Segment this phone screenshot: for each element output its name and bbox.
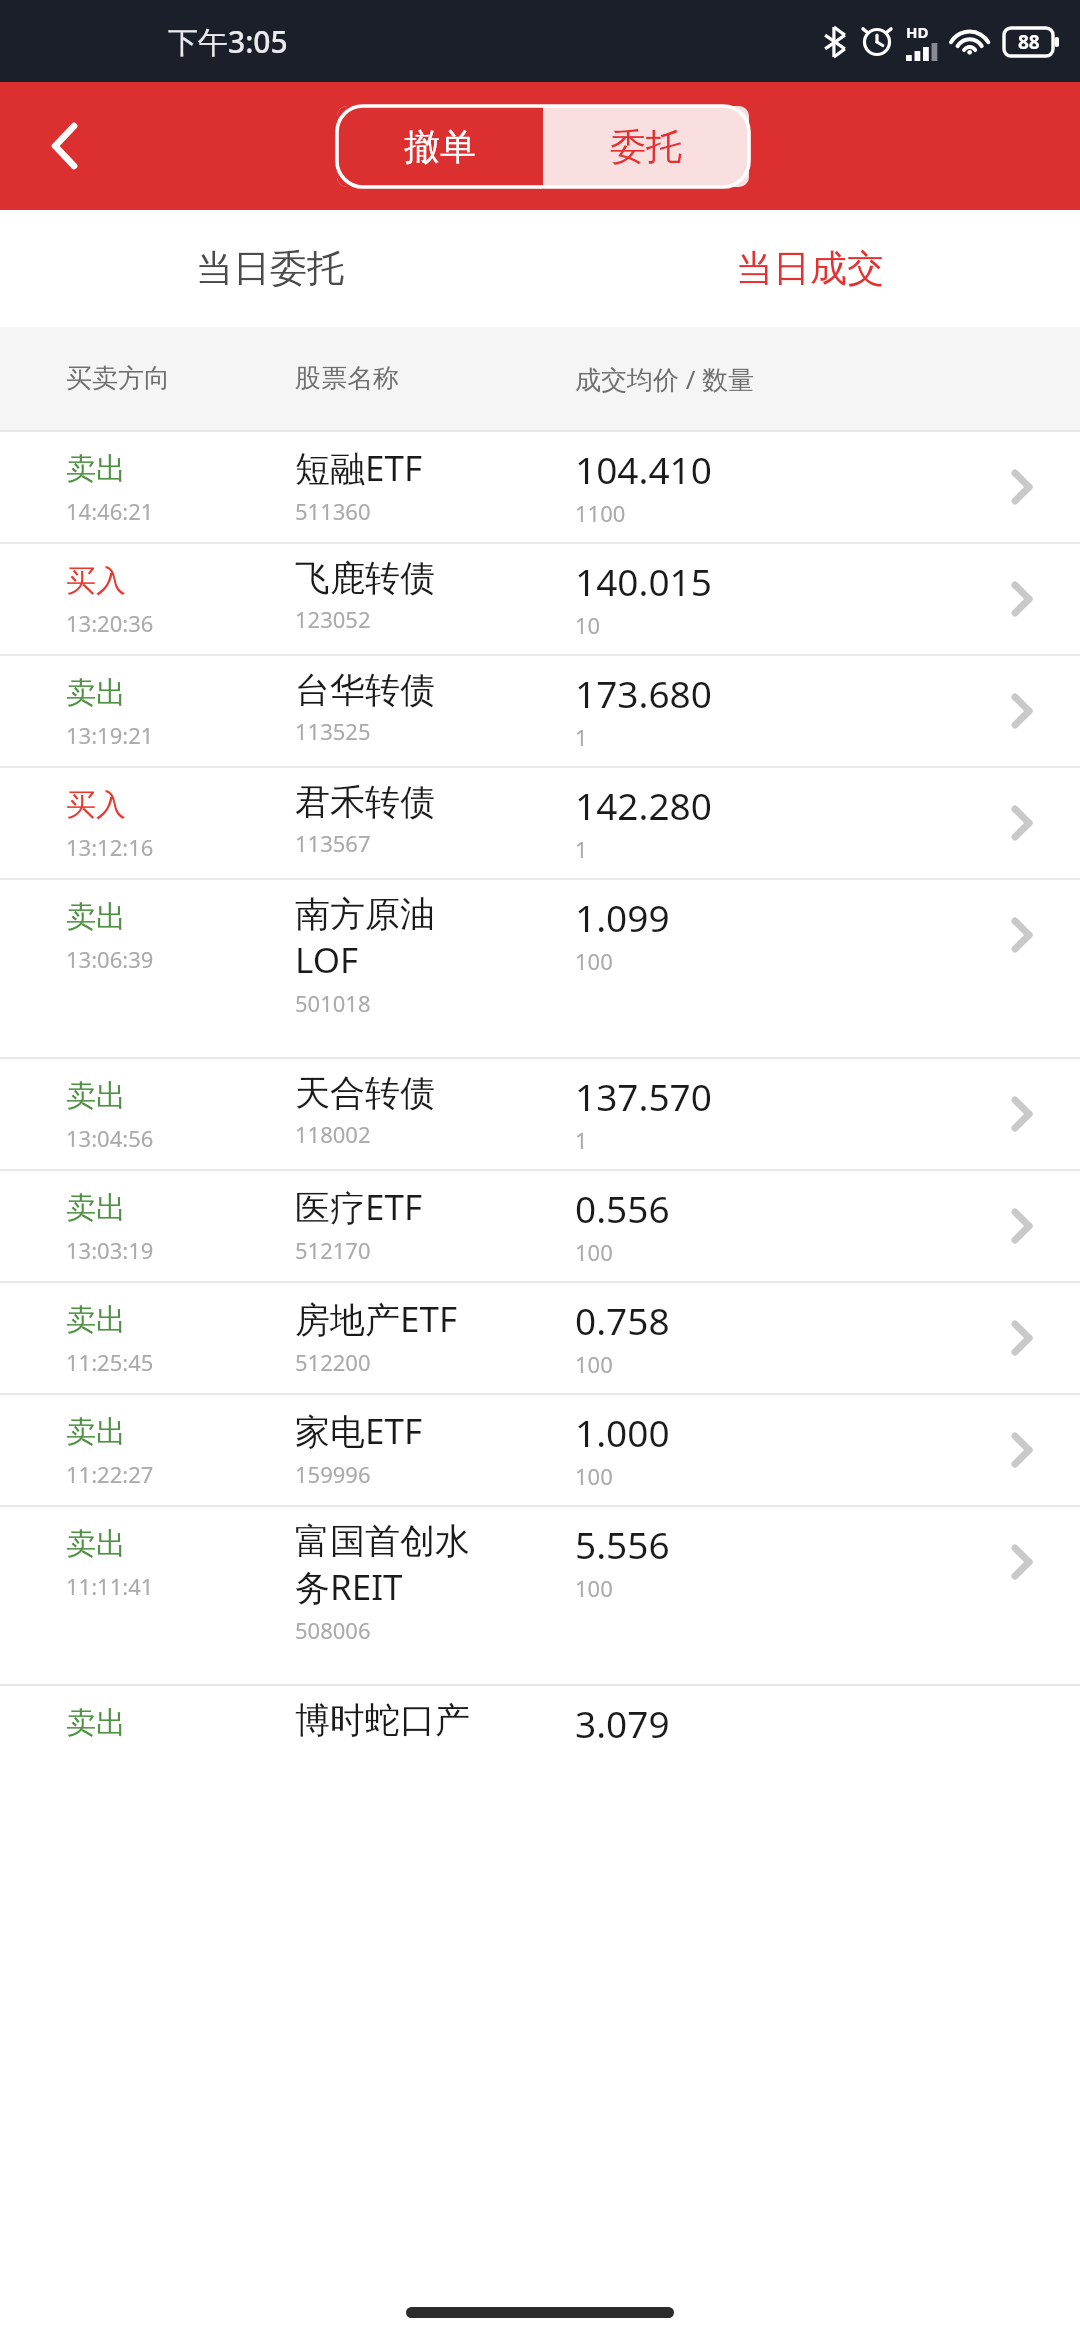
staticText: 100 bbox=[575, 1349, 613, 1379]
staticText: 104.410 bbox=[575, 444, 712, 494]
staticText: 南方原油 bbox=[295, 892, 435, 936]
button[interactable]: 当日委托 bbox=[0, 210, 540, 327]
staticText: 买卖方向 bbox=[66, 362, 170, 395]
staticText: 医疗ETF bbox=[295, 1183, 423, 1231]
staticText: 13:03:19 bbox=[66, 1235, 154, 1265]
staticText: 务REIT bbox=[295, 1563, 403, 1611]
button[interactable]: 卖出 bbox=[0, 1686, 1080, 1746]
staticText: 下午3:05 bbox=[168, 21, 288, 62]
staticText: 1 bbox=[575, 722, 588, 752]
staticText: 卖出 bbox=[66, 1301, 126, 1339]
staticText: 13:12:16 bbox=[66, 832, 154, 862]
button[interactable]: 卖出 bbox=[0, 1507, 1080, 1684]
button[interactable]: Back bbox=[24, 105, 106, 187]
staticText: 10 bbox=[575, 610, 601, 640]
staticText: 100 bbox=[575, 946, 613, 976]
staticText: 家电ETF bbox=[295, 1407, 423, 1455]
staticText: 13:19:21 bbox=[66, 720, 154, 750]
staticText: 113525 bbox=[295, 716, 371, 746]
staticText: 卖出 bbox=[66, 1413, 126, 1451]
staticText: 天合转债 bbox=[295, 1071, 435, 1115]
staticText: 13:06:39 bbox=[66, 944, 154, 974]
staticText: 508006 bbox=[295, 1615, 371, 1645]
staticText: 房地产ETF bbox=[295, 1295, 458, 1343]
button[interactable]: 卖出 bbox=[0, 1395, 1080, 1505]
staticText: 159996 bbox=[295, 1459, 371, 1489]
staticText: 委托 bbox=[610, 124, 682, 169]
button[interactable]: 卖出 bbox=[0, 880, 1080, 1057]
staticText: 100 bbox=[575, 1237, 613, 1267]
staticText: 1 bbox=[575, 1125, 588, 1155]
staticText: 501018 bbox=[295, 988, 371, 1018]
button[interactable]: 卖出 bbox=[0, 1283, 1080, 1393]
staticText: 股票名称 bbox=[295, 362, 399, 395]
staticText: 5.556 bbox=[575, 1519, 670, 1569]
staticText: 卖出 bbox=[66, 1189, 126, 1227]
staticText: 台华转债 bbox=[295, 668, 435, 712]
button[interactable]: 买入 bbox=[0, 544, 1080, 654]
staticText: 14:46:21 bbox=[66, 496, 154, 526]
staticText: 11:22:27 bbox=[66, 1459, 154, 1489]
staticText: 137.570 bbox=[575, 1071, 712, 1121]
staticText: 13:04:56 bbox=[66, 1123, 154, 1153]
staticText: 11:11:41 bbox=[66, 1571, 154, 1601]
staticText: 173.680 bbox=[575, 668, 712, 718]
staticText: 140.015 bbox=[575, 556, 712, 606]
staticText: 0.758 bbox=[575, 1295, 670, 1345]
staticText: 君禾转债 bbox=[295, 780, 435, 824]
staticText: 买入 bbox=[66, 786, 126, 824]
staticText: 当日委托 bbox=[196, 245, 344, 292]
staticText: 卖出 bbox=[66, 450, 126, 488]
staticText: 511360 bbox=[295, 496, 371, 526]
button[interactable]: 卖出 bbox=[0, 432, 1080, 542]
staticText: 1.000 bbox=[575, 1407, 670, 1457]
button[interactable]: 卖出 bbox=[0, 656, 1080, 766]
staticText: 短融ETF bbox=[295, 444, 423, 492]
staticText: 撤单 bbox=[404, 124, 476, 169]
staticText: 0.556 bbox=[575, 1183, 670, 1233]
staticText: 512200 bbox=[295, 1347, 371, 1377]
button[interactable]: 撤单 bbox=[337, 106, 543, 187]
staticText: 113567 bbox=[295, 828, 371, 858]
staticText: 卖出 bbox=[66, 674, 126, 712]
staticText: 富国首创水 bbox=[295, 1519, 470, 1563]
button[interactable]: 卖出 bbox=[0, 1059, 1080, 1169]
button[interactable]: 卖出 bbox=[0, 1171, 1080, 1281]
staticText: 博时蛇口产 bbox=[295, 1698, 470, 1742]
staticText: 卖出 bbox=[66, 1704, 126, 1742]
button[interactable]: 委托 bbox=[543, 106, 749, 187]
staticText: 118002 bbox=[295, 1119, 371, 1149]
staticText: 3.079 bbox=[575, 1698, 670, 1746]
staticText: 100 bbox=[575, 1461, 613, 1491]
button[interactable]: 买入 bbox=[0, 768, 1080, 878]
staticText: 100 bbox=[575, 1573, 613, 1603]
staticText: 卖出 bbox=[66, 1077, 126, 1115]
staticText: 88 bbox=[1018, 29, 1040, 55]
staticText: 飞鹿转债 bbox=[295, 556, 435, 600]
staticText: HD bbox=[906, 22, 929, 42]
button[interactable]: 当日成交 bbox=[540, 210, 1080, 327]
staticText: 买入 bbox=[66, 562, 126, 600]
staticText: 13:20:36 bbox=[66, 608, 154, 638]
staticText: 成交均价 / 数量 bbox=[575, 361, 755, 397]
staticText: 当日成交 bbox=[736, 245, 884, 292]
staticText: 142.280 bbox=[575, 780, 712, 830]
staticText: 卖出 bbox=[66, 1525, 126, 1563]
staticText: 11:25:45 bbox=[66, 1347, 154, 1377]
staticText: LOF bbox=[295, 936, 359, 984]
staticText: 512170 bbox=[295, 1235, 371, 1265]
staticText: 1 bbox=[575, 834, 588, 864]
staticText: 123052 bbox=[295, 604, 371, 634]
staticText: 1.099 bbox=[575, 892, 670, 942]
staticText: 卖出 bbox=[66, 898, 126, 936]
staticText: 1100 bbox=[575, 498, 626, 528]
